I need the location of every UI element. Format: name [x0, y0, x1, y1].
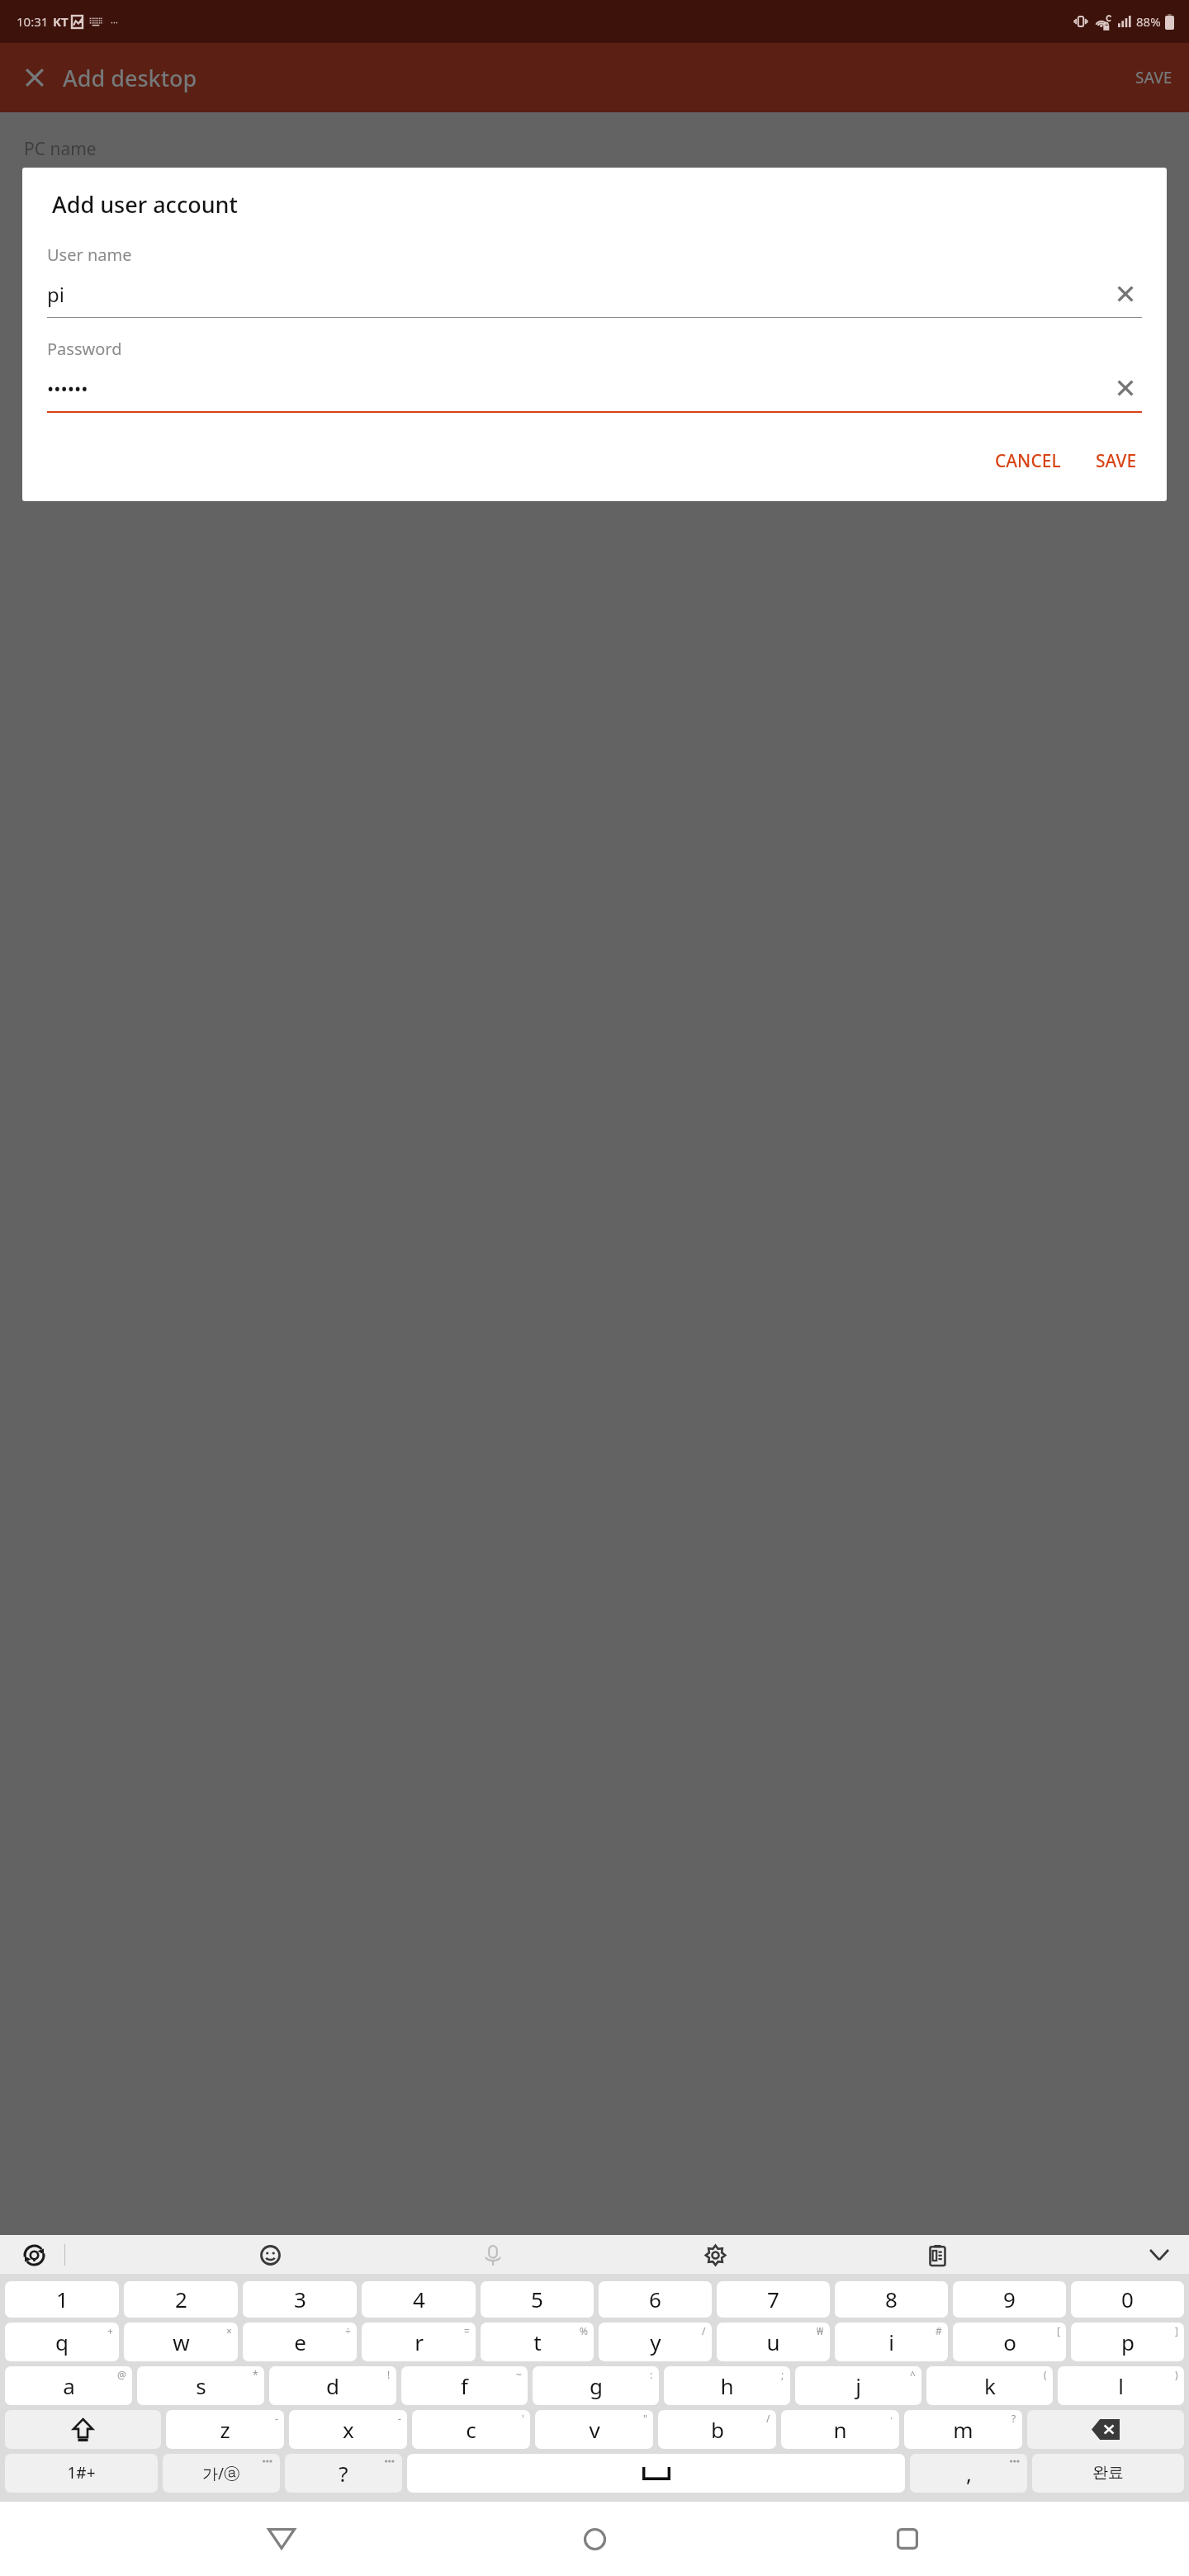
button[interactable]: Clipboard [919, 2237, 955, 2273]
button[interactable]: " [535, 2410, 653, 2449]
button[interactable]: 9 [953, 2281, 1066, 2318]
button[interactable]: [ [953, 2323, 1066, 2361]
button[interactable]: SAVE [1084, 441, 1149, 481]
button[interactable]: # [835, 2323, 948, 2361]
staticText: SAVE [1135, 67, 1172, 88]
staticText: = [464, 2324, 470, 2337]
staticText: u [766, 2327, 780, 2356]
staticText: 88% [1136, 13, 1161, 30]
button[interactable]: ' [412, 2410, 530, 2449]
staticText: q [55, 2327, 69, 2356]
button[interactable]: Voice input [475, 2237, 511, 2273]
staticText: User name [47, 244, 132, 266]
button[interactable]: Settings [697, 2237, 733, 2273]
staticText: : [650, 2368, 653, 2381]
staticText: PC name [24, 137, 97, 161]
staticText: @ [117, 2368, 126, 2381]
button[interactable]: Back [250, 2507, 313, 2570]
button[interactable]: 2 [124, 2281, 238, 2318]
button[interactable]: - [166, 2410, 284, 2449]
button[interactable]: Home [563, 2507, 626, 2570]
staticText: e [294, 2327, 306, 2356]
button[interactable]: ₩ [717, 2323, 830, 2361]
button[interactable]: = [362, 2323, 476, 2361]
button[interactable]: ? [904, 2410, 1022, 2449]
staticText: ; [781, 2368, 784, 2381]
staticText: v [589, 2415, 600, 2444]
staticText: ÷ [345, 2324, 351, 2337]
button[interactable]: ; [664, 2366, 790, 2405]
button[interactable]: Clear [1109, 277, 1142, 310]
staticText: i [888, 2327, 894, 2356]
staticText: # [936, 2324, 942, 2337]
staticText: b [711, 2415, 724, 2444]
button[interactable]: * [137, 2366, 264, 2405]
button[interactable]: 8 [835, 2281, 948, 2318]
button[interactable]: Recents [876, 2507, 939, 2570]
staticText: 2 [175, 2285, 187, 2313]
button[interactable]: 1#+ [5, 2454, 158, 2493]
staticText: •••••• [47, 376, 1109, 400]
button[interactable]: Suggestions [17, 2237, 51, 2272]
button[interactable]: 3 [243, 2281, 357, 2318]
staticText: CANCEL [995, 449, 1061, 473]
staticText: ₩ [817, 2324, 824, 2337]
button[interactable]: ) [1058, 2366, 1184, 2405]
button[interactable]: : [533, 2366, 659, 2405]
staticText: j [855, 2371, 861, 2400]
button[interactable]: ] [1071, 2323, 1184, 2361]
staticText: " [643, 2412, 647, 2425]
button[interactable]: Emoji [252, 2237, 288, 2273]
staticText: KT [53, 13, 69, 30]
button[interactable]: Close [12, 54, 58, 101]
button[interactable]: 4 [362, 2281, 476, 2318]
button[interactable]: CANCEL [983, 441, 1073, 481]
button[interactable]: % [481, 2323, 594, 2361]
staticText: 10:31 [17, 13, 49, 30]
button[interactable]: 1 [5, 2281, 119, 2318]
button[interactable]: 완료 [1032, 2454, 1184, 2493]
button[interactable]: ~ [401, 2366, 528, 2405]
staticText: s [196, 2371, 206, 2400]
button[interactable]: ^ [795, 2366, 921, 2405]
button[interactable]: ! [269, 2366, 396, 2405]
button[interactable]: 0 [1071, 2281, 1184, 2318]
button[interactable]: @ [5, 2366, 132, 2405]
button[interactable]: , [910, 2454, 1027, 2493]
button[interactable]: + [5, 2323, 119, 2361]
button[interactable]: · [781, 2410, 899, 2449]
staticText: p [1121, 2327, 1135, 2356]
button[interactable]: / [658, 2410, 776, 2449]
button[interactable] [407, 2454, 905, 2493]
staticText: ( [1044, 2368, 1047, 2381]
staticText: 0 [1121, 2285, 1134, 2313]
button[interactable]: ? [285, 2454, 402, 2493]
button[interactable]: 6 [599, 2281, 712, 2318]
staticText: 가/ⓐ [202, 2463, 240, 2484]
button[interactable]: Hide keyboard [1141, 2237, 1177, 2273]
staticText: ··· [111, 16, 118, 28]
button[interactable]: × [124, 2323, 238, 2361]
button[interactable] [5, 2410, 161, 2449]
button[interactable] [1027, 2410, 1184, 2449]
button[interactable]: ÷ [243, 2323, 357, 2361]
staticText: o [1003, 2327, 1016, 2356]
staticText: 7 [767, 2285, 779, 2313]
button[interactable]: 7 [717, 2281, 830, 2318]
button[interactable]: SAVE [1119, 67, 1189, 88]
staticText: g [590, 2371, 603, 2400]
button[interactable]: / [599, 2323, 712, 2361]
staticText: 1#+ [67, 2462, 96, 2484]
button[interactable]: ( [926, 2366, 1053, 2405]
button[interactable]: - [289, 2410, 407, 2449]
staticText: 9 [1003, 2285, 1016, 2313]
staticText: d [326, 2371, 339, 2400]
staticText: l [1118, 2371, 1124, 2400]
button[interactable]: 가/ⓐ [163, 2454, 280, 2493]
staticText: ! [387, 2368, 391, 2381]
staticText: h [720, 2371, 734, 2400]
button[interactable]: 5 [481, 2281, 594, 2318]
staticText: f [461, 2371, 468, 2400]
staticText: ? [339, 2459, 348, 2488]
button[interactable]: Clear [1109, 372, 1142, 405]
